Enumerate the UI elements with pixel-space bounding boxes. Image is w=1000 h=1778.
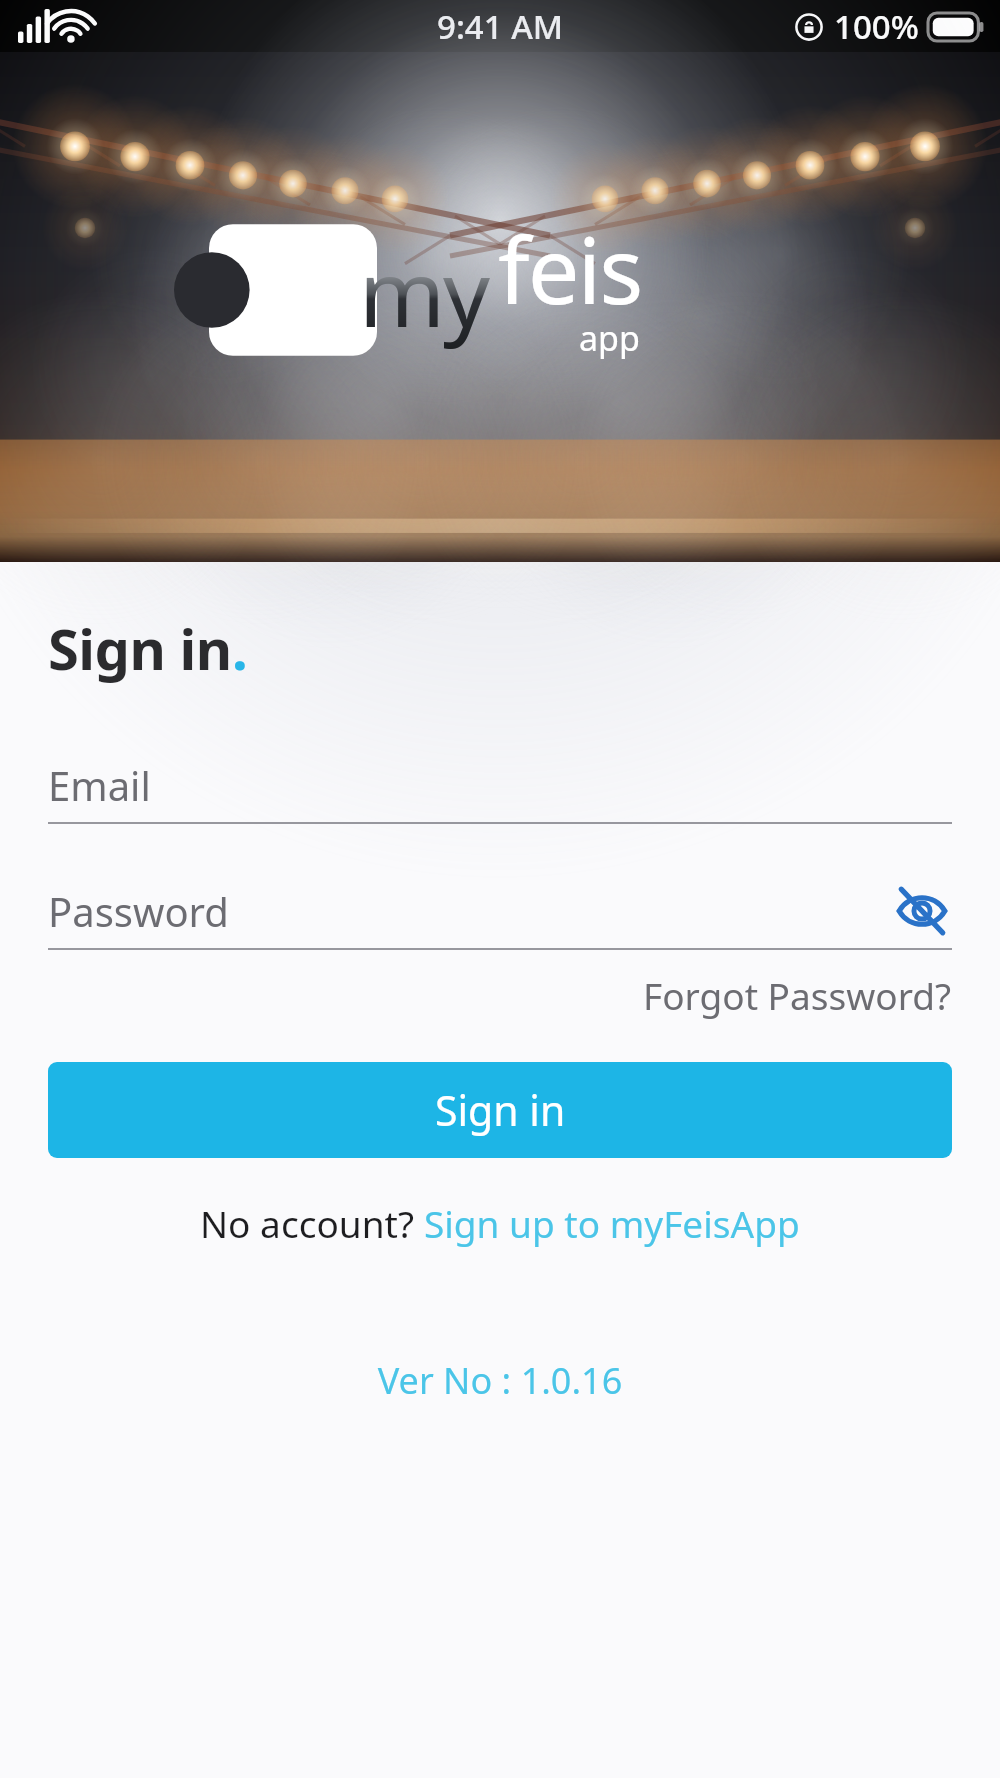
staticText: feis xyxy=(498,206,642,331)
staticText: Sign in xyxy=(435,1082,566,1138)
button[interactable]: Show password xyxy=(892,881,952,941)
staticText: . xyxy=(232,610,248,686)
button[interactable]: Sign up to myFeisApp xyxy=(424,1198,800,1248)
staticText: Ver No : 1.0.16 xyxy=(0,1356,1000,1405)
staticText: Sign in xyxy=(48,610,232,686)
staticText: app xyxy=(579,315,640,361)
staticText: Email xyxy=(48,758,151,812)
button[interactable]: Sign in xyxy=(48,1062,952,1158)
staticText: Password xyxy=(48,884,229,938)
staticText: 100% xyxy=(834,4,919,49)
staticText: my xyxy=(359,229,488,354)
staticText: 9:41 AM xyxy=(437,4,564,49)
staticText: No account? xyxy=(200,1198,424,1248)
button[interactable]: Forgot Password? xyxy=(643,964,1000,1026)
button[interactable]: Email xyxy=(48,748,952,824)
button[interactable]: Password xyxy=(48,874,952,950)
